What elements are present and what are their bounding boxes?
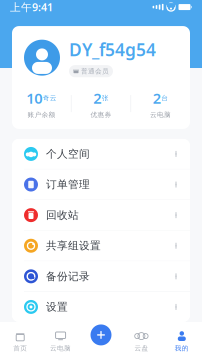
staticText: 首页 [13,344,27,352]
button[interactable]: 设置 [12,292,190,322]
staticText: 奇云 [43,94,57,102]
staticText: DY_f54g54 [69,38,156,61]
staticText: 云电脑 [50,344,71,352]
staticText: 备份记录 [46,270,90,283]
staticText: 10 [26,88,42,108]
button[interactable]: 订单管理 [12,169,190,199]
button[interactable]: 备份记录 [12,261,190,291]
button[interactable]: 首页 [0,322,40,359]
staticText: 我的 [175,344,189,352]
button[interactable]: 新建 [87,321,115,349]
staticText: 2 [153,88,161,108]
staticText: 台 [161,94,168,102]
staticText: 设置 [46,300,68,313]
button[interactable]: 共享组设置 [12,231,190,261]
staticText: 订单管理 [46,178,90,191]
staticText: 共享组设置 [46,239,101,252]
button[interactable]: 我的 [162,322,202,359]
staticText: 优惠券 [90,111,111,119]
staticText: 云盘 [134,344,148,352]
button[interactable]: 个人空间 [12,139,190,169]
button[interactable]: 云电脑 [40,322,81,359]
staticText: 上午9:41 [10,0,53,14]
staticText: 账户余额 [27,111,55,119]
button[interactable]: 云盘 [121,322,162,359]
staticText: 张 [102,94,109,102]
staticText: 2 [93,88,101,108]
staticText: 回收站 [46,209,79,222]
staticText: 云电脑 [150,111,171,119]
button[interactable]: 回收站 [12,200,190,230]
staticText: 普通会员 [81,67,109,75]
staticText: 个人空间 [46,147,90,160]
